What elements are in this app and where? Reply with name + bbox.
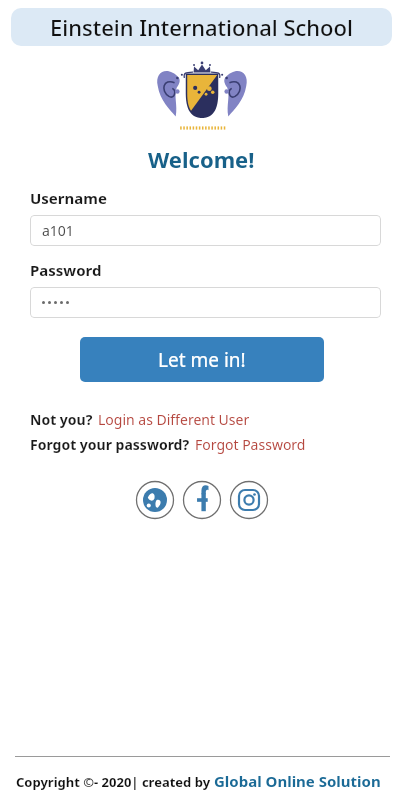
staticText: Password <box>30 260 102 280</box>
staticText: Let me in! <box>158 347 246 373</box>
staticText: Forgot Password <box>195 435 306 454</box>
button[interactable]: a101 <box>30 215 381 246</box>
button[interactable]: Website <box>135 480 175 520</box>
staticText: Copyright ©- 2020| created by <box>16 773 214 791</box>
button[interactable]: Login as Different User <box>98 410 250 429</box>
button[interactable] <box>30 287 381 318</box>
staticText: Welcome! <box>148 144 255 174</box>
button[interactable]: Let me in! <box>80 337 324 382</box>
staticText: a101 <box>42 221 74 240</box>
staticText: Einstein International School <box>50 12 353 42</box>
button[interactable]: Facebook <box>182 480 222 520</box>
staticText: Global Online Solution <box>214 771 381 791</box>
button[interactable]: Global Online Solution <box>214 771 381 791</box>
staticText: Login as Different User <box>98 410 250 429</box>
staticText: Forgot your password? <box>30 435 190 454</box>
button[interactable]: Instagram <box>229 480 269 520</box>
staticText: Username <box>30 188 107 208</box>
button[interactable]: Forgot Password <box>195 435 306 454</box>
staticText: Not you? <box>30 410 93 429</box>
